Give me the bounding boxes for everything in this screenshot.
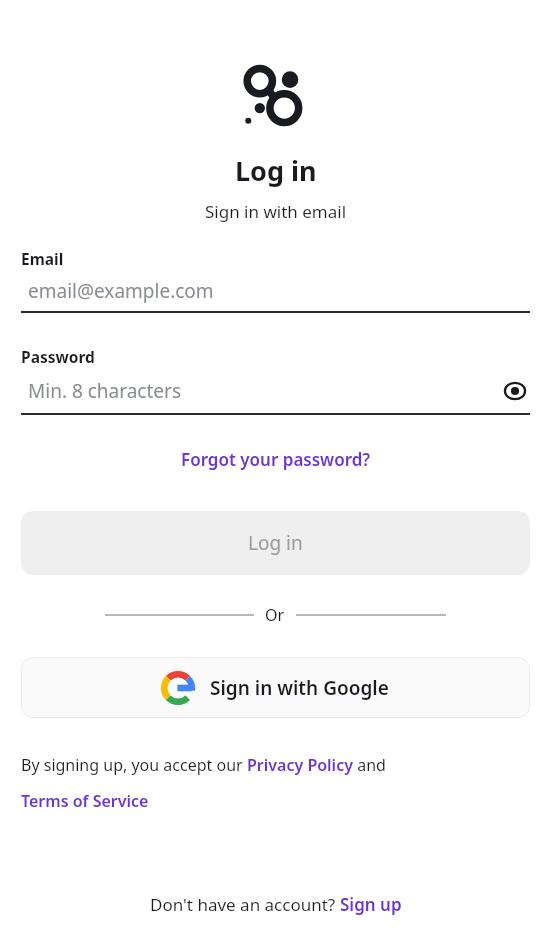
button[interactable]: Min. 8 characters [21,376,530,406]
staticText: Password [21,346,95,367]
button[interactable]: Privacy Policy [247,754,353,776]
button[interactable]: Forgot your password? [175,445,377,474]
button[interactable]: Sign up [340,893,402,916]
staticText: Or [265,604,285,626]
staticText: Email [21,248,64,269]
button[interactable]: Sign in with Google [21,657,530,718]
staticText: and [353,754,386,776]
staticText: Don't have an account? [150,893,340,916]
staticText: By signing up, you accept our [21,754,247,776]
staticText: Log in [248,530,303,556]
staticText: Log in [235,152,317,189]
button[interactable]: Show password [500,376,530,406]
staticText: Terms of Service [21,790,149,812]
staticText: Min. 8 characters [28,378,500,404]
button[interactable]: Log in [21,511,530,575]
staticText: Sign in with email [205,200,347,223]
button[interactable]: Terms of Service [21,790,149,812]
staticText: Sign in with Google [210,675,389,701]
staticText: Privacy Policy [247,754,353,776]
staticText: Sign up [340,893,402,916]
button[interactable]: email@example.com [21,278,530,304]
staticText: email@example.com [28,278,530,304]
staticText: Forgot your password? [181,448,371,471]
